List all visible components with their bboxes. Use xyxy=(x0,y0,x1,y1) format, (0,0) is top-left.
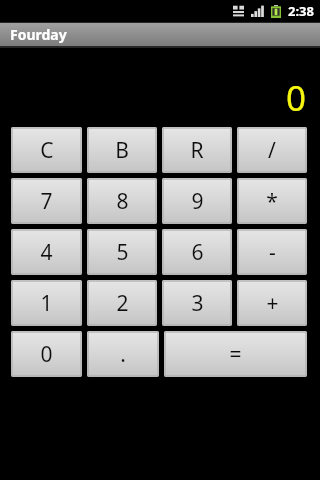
staticText: Fourday xyxy=(10,25,67,44)
staticText: 4 xyxy=(40,238,53,267)
button[interactable]: 7 xyxy=(11,178,82,224)
button[interactable]: 1 xyxy=(11,280,82,326)
staticText: 7 xyxy=(40,187,53,216)
staticText: C xyxy=(40,136,54,165)
staticText: . xyxy=(120,340,126,369)
button[interactable]: 6 xyxy=(162,229,232,275)
staticText: 1 xyxy=(40,289,53,318)
staticText: 2:38 xyxy=(288,2,314,20)
button[interactable]: R xyxy=(162,127,232,173)
staticText: B xyxy=(115,136,129,165)
button[interactable]: + xyxy=(237,280,307,326)
staticText: 9 xyxy=(191,187,204,216)
staticText: + xyxy=(266,289,279,318)
staticText: / xyxy=(268,136,276,165)
button[interactable]: 5 xyxy=(87,229,157,275)
staticText: 6 xyxy=(191,238,204,267)
button[interactable]: . xyxy=(87,331,159,377)
button[interactable]: / xyxy=(237,127,307,173)
staticText: R xyxy=(190,136,204,165)
button[interactable]: 2 xyxy=(87,280,157,326)
staticText: * xyxy=(266,187,278,216)
staticText: 0 xyxy=(286,74,307,122)
button[interactable]: 9 xyxy=(162,178,232,224)
button[interactable]: B xyxy=(87,127,157,173)
button[interactable]: - xyxy=(237,229,307,275)
staticText: = xyxy=(229,340,242,369)
staticText: 8 xyxy=(116,187,129,216)
button[interactable]: 8 xyxy=(87,178,157,224)
staticText: - xyxy=(269,238,276,267)
button[interactable]: C xyxy=(11,127,82,173)
staticText: 0 xyxy=(40,340,53,369)
staticText: 3 xyxy=(191,289,204,318)
staticText: 5 xyxy=(116,238,129,267)
button[interactable]: 0 xyxy=(11,331,82,377)
button[interactable]: * xyxy=(237,178,307,224)
button[interactable]: = xyxy=(164,331,307,377)
button[interactable]: 3 xyxy=(162,280,232,326)
button[interactable]: 4 xyxy=(11,229,82,275)
staticText: 2 xyxy=(116,289,129,318)
